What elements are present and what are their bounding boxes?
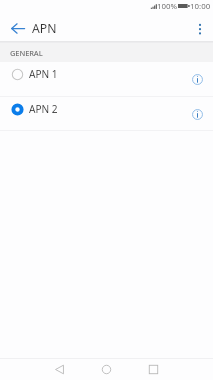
button[interactable]: Details for APN 1 (183, 64, 213, 94)
button[interactable]: Details for APN 2 (183, 99, 213, 129)
staticText: GENERAL (10, 48, 43, 58)
button[interactable]: Recent apps (143, 359, 164, 380)
staticText: APN 2 (29, 102, 58, 116)
staticText: APN (32, 20, 57, 37)
button[interactable]: More options (187, 14, 213, 41)
staticText: APN 1 (29, 67, 58, 81)
staticText: 100% (157, 1, 178, 12)
button[interactable]: APN 2 (0, 97, 213, 130)
button[interactable]: Back (49, 359, 70, 380)
button[interactable]: APN 1 (0, 62, 213, 96)
button[interactable]: Home (96, 359, 117, 380)
button[interactable]: Navigate up (0, 14, 35, 41)
staticText: 10:00 (190, 1, 211, 12)
